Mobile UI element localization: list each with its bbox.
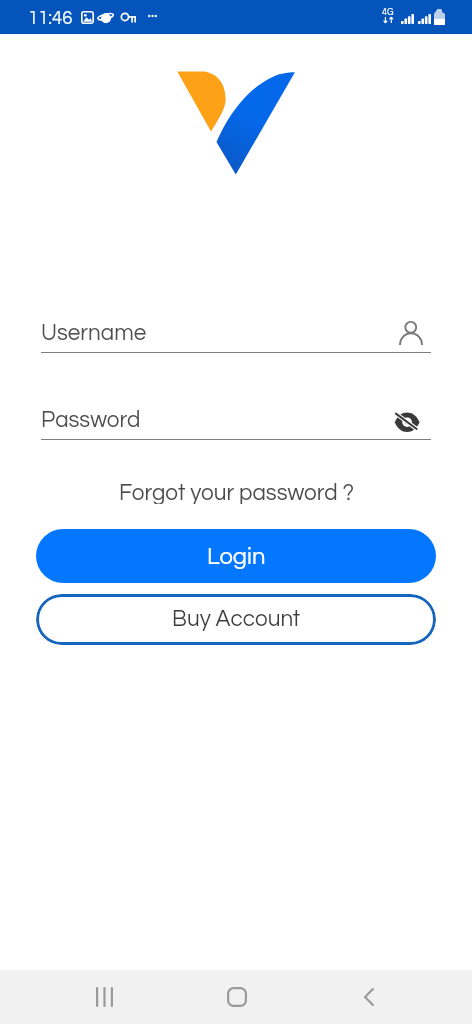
button[interactable]: Back: [344, 972, 393, 1021]
button[interactable]: Forgot your password ?: [0, 482, 472, 504]
button[interactable]: Recents: [80, 972, 129, 1021]
staticText: Forgot your password ?: [119, 482, 354, 504]
staticText: Buy Account: [172, 608, 301, 631]
button[interactable]: Account: [399, 321, 423, 345]
staticText: Password: [41, 409, 141, 432]
staticText: 4G: [382, 8, 394, 17]
staticText: 11:46: [28, 9, 73, 28]
button[interactable]: Home: [212, 972, 261, 1021]
staticText: Login: [207, 544, 266, 569]
staticText: Username: [41, 322, 147, 345]
button[interactable]: Login: [36, 529, 436, 583]
button[interactable]: Toggle password visibility: [395, 407, 421, 433]
button[interactable]: Buy Account: [36, 594, 436, 645]
